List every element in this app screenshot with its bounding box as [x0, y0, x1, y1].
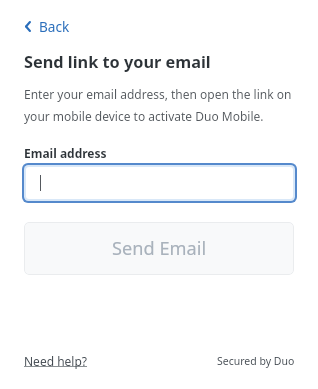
button[interactable]: Need help?: [18, 347, 94, 375]
staticText: Need help?: [24, 353, 88, 369]
staticText: Email address: [24, 145, 107, 161]
button[interactable]: [26, 167, 293, 199]
staticText: Back: [39, 17, 70, 36]
button[interactable]: Send Email: [24, 222, 294, 275]
button[interactable]: Back: [17, 11, 78, 42]
staticText: Enter your email address, then open the …: [24, 86, 296, 125]
staticText: Send Email: [112, 236, 207, 261]
staticText: Send link to your email: [24, 51, 211, 73]
staticText: Secured by Duo: [217, 354, 295, 368]
